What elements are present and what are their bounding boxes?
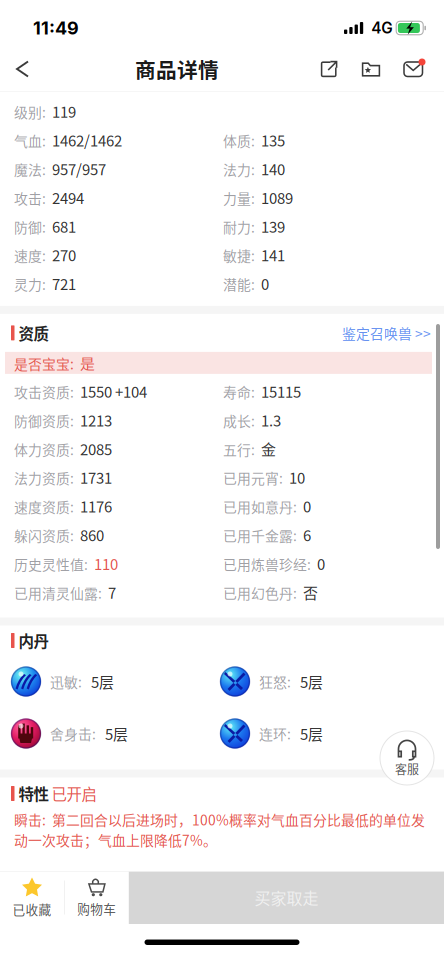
staticText: 否	[297, 581, 318, 603]
staticText: 耐力:	[223, 217, 255, 237]
staticText: 迅敏:	[50, 671, 82, 692]
staticText: 攻击:	[14, 188, 46, 208]
staticText: 1213	[74, 409, 112, 431]
staticText: 潜能:	[223, 274, 255, 294]
staticText: 已用幻色丹:	[223, 583, 297, 603]
staticText: 6	[297, 524, 311, 545]
staticText: 气血:	[14, 130, 46, 151]
staticText: 客服	[395, 760, 419, 778]
staticText: 7	[102, 581, 116, 603]
button[interactable]: 鉴定召唤兽 >>	[342, 314, 444, 352]
staticText: 已用如意丹:	[223, 496, 297, 517]
staticText: 速度:	[14, 245, 46, 265]
staticText: 舍身击:	[50, 723, 96, 744]
staticText: 历史灵性值:	[14, 554, 88, 574]
staticText: 是否宝宝:	[14, 353, 74, 373]
staticText: 1089	[255, 187, 293, 208]
staticText: 860	[74, 524, 104, 545]
staticText: 连环:	[259, 723, 291, 744]
staticText: 141	[255, 244, 285, 266]
staticText: 瞬击: 第二回合以后进场时，100%概率对气血百分比最低的单位发动一次攻击；气血…	[14, 809, 425, 850]
staticText: 成长:	[223, 410, 255, 430]
staticText: 681	[46, 215, 76, 237]
staticText: 购物车	[77, 899, 116, 918]
button[interactable]: 购物车	[65, 871, 129, 924]
staticText: 特性	[14, 782, 48, 805]
staticText: 资质	[14, 322, 48, 344]
staticText: 1462/1462	[46, 129, 122, 151]
staticText: 已用千金露:	[223, 525, 297, 545]
button[interactable]: 分享	[308, 46, 350, 92]
staticText: 躲闪资质:	[14, 525, 74, 545]
button[interactable]: 收藏夹	[350, 46, 392, 92]
staticText: 狂怒:	[259, 671, 291, 692]
staticText: 力量:	[223, 188, 255, 208]
staticText: 法力:	[223, 159, 255, 179]
staticText: 体力资质:	[14, 439, 74, 459]
staticText: 魔法:	[14, 159, 46, 179]
staticText: 灵力:	[14, 274, 46, 294]
staticText: 119	[46, 100, 76, 122]
staticText: 是	[74, 352, 95, 374]
staticText: 速度资质:	[14, 496, 74, 517]
staticText: 已收藏	[12, 900, 51, 918]
staticText: 1731	[74, 466, 112, 488]
staticText: 商品详情	[135, 54, 219, 84]
staticText: 0	[297, 495, 311, 517]
staticText: 5层	[300, 671, 323, 692]
staticText: 内丹	[14, 629, 48, 652]
staticText: 10	[283, 466, 305, 488]
staticText: 135	[255, 129, 285, 151]
staticText: 金	[255, 438, 276, 459]
staticText: 2494	[46, 187, 84, 208]
staticText: 法力资质:	[14, 468, 74, 488]
staticText: 2085	[74, 438, 112, 459]
staticText: 级别:	[14, 102, 46, 122]
staticText: 五行:	[223, 439, 255, 459]
button[interactable]: 买家取走	[129, 871, 444, 924]
staticText: 1176	[74, 495, 112, 517]
staticText: 11:49	[33, 17, 79, 39]
staticText: 110	[88, 553, 118, 574]
staticText: 1550 +104	[74, 380, 147, 402]
button[interactable]: 已收藏	[0, 871, 64, 924]
staticText: 721	[46, 273, 76, 294]
staticText: 已用清灵仙露:	[14, 583, 102, 603]
staticText: 0	[311, 553, 325, 574]
staticText: 5层	[300, 723, 323, 744]
button[interactable]: 客服	[380, 731, 434, 785]
staticText: 敏捷:	[223, 245, 255, 265]
staticText: 140	[255, 158, 285, 179]
staticText: 体质:	[223, 130, 255, 151]
staticText: 攻击资质:	[14, 382, 74, 402]
staticText: 已用炼兽珍经:	[223, 554, 311, 574]
button[interactable]: 消息	[392, 46, 434, 92]
staticText: 5层	[91, 671, 114, 692]
staticText: 寿命:	[223, 382, 255, 402]
staticText: 4G	[363, 19, 396, 37]
staticText: 防御资质:	[14, 410, 74, 430]
staticText: 防御:	[14, 217, 46, 237]
staticText: 270	[46, 244, 76, 266]
staticText: 1.3	[255, 409, 281, 431]
staticText: 957/957	[46, 158, 106, 179]
staticText: 已开启	[48, 782, 96, 805]
button[interactable]: 返回	[0, 46, 46, 92]
staticText: 买家取走	[254, 886, 318, 909]
staticText: 5层	[105, 723, 128, 744]
staticText: 139	[255, 215, 285, 237]
staticText: 15115	[255, 380, 301, 402]
staticText: 鉴定召唤兽 >>	[342, 323, 431, 343]
staticText: 0	[255, 273, 269, 294]
staticText: 已用元宵:	[223, 468, 283, 488]
